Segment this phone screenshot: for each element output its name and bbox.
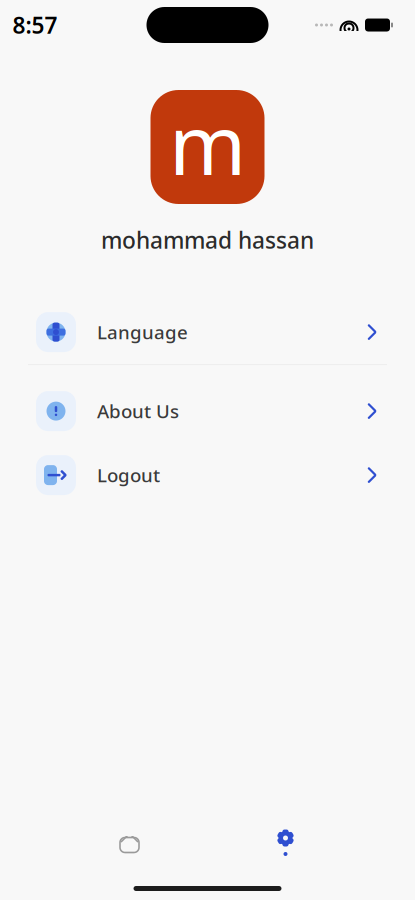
button[interactable]: Home [51,814,207,870]
staticText: About Us [97,399,179,423]
staticText: Language [97,320,188,344]
staticText: Logout [97,463,160,487]
button[interactable]: Settings [207,814,363,870]
button[interactable]: About Us [0,379,415,443]
button[interactable]: Language [0,300,415,364]
staticText: 8:57 [12,10,57,40]
staticText: m [169,88,246,198]
staticText: mohammad hassan [101,225,314,255]
button[interactable]: Logout [0,443,415,507]
